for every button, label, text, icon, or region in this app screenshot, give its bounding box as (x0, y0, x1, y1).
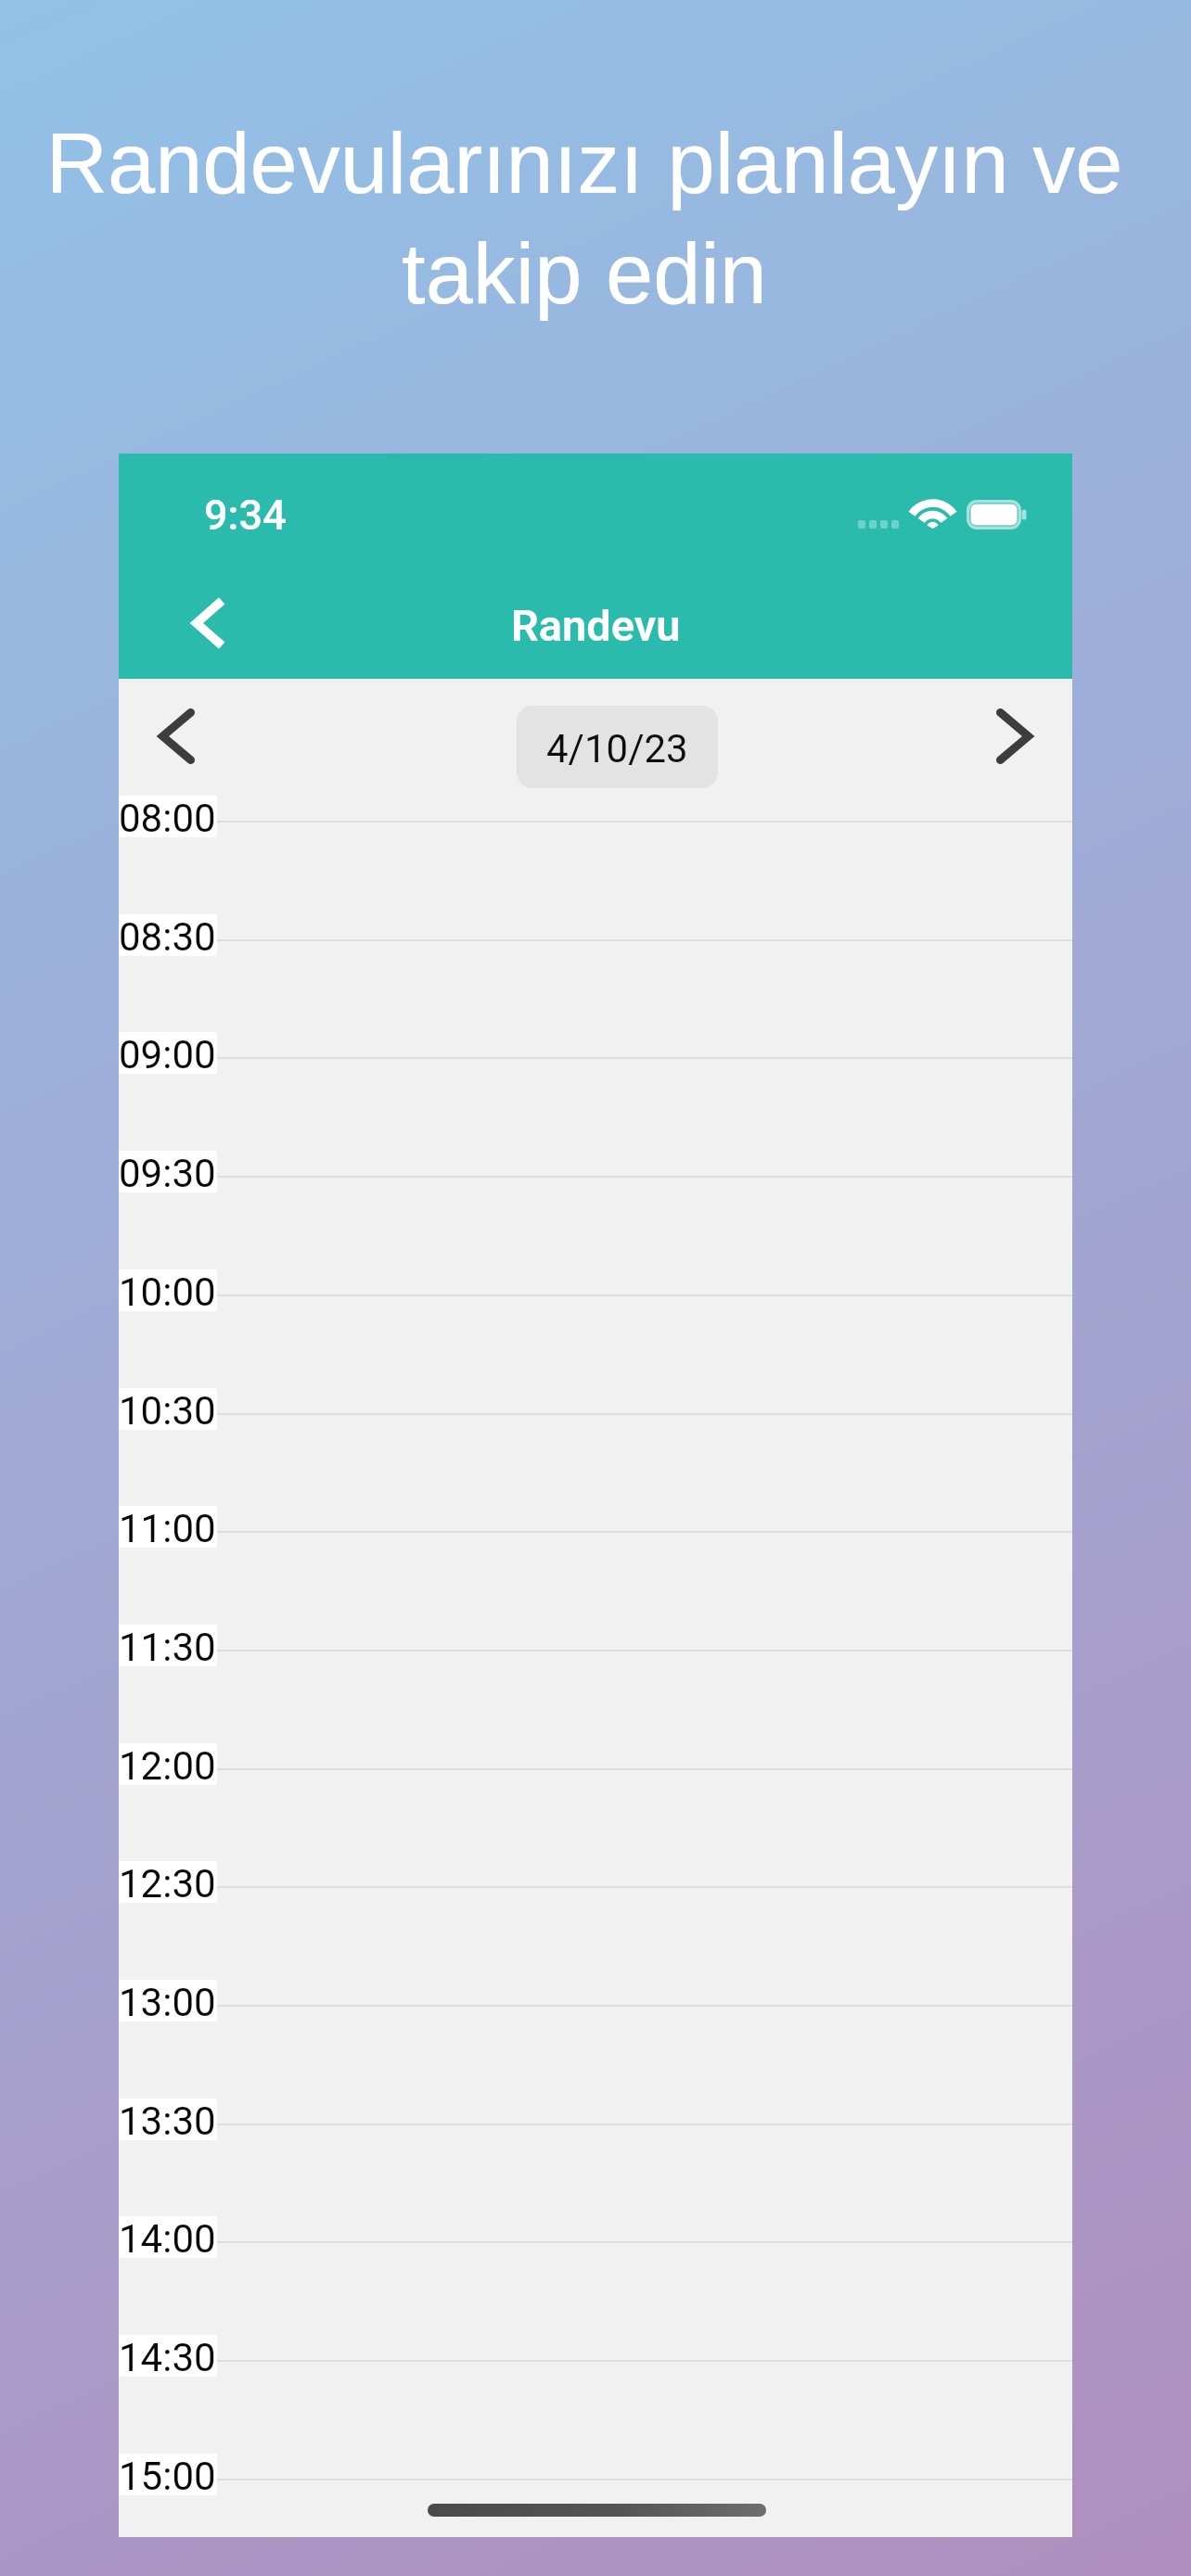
button[interactable]: Back (162, 587, 255, 659)
button[interactable] (119, 2241, 1072, 2359)
button[interactable] (119, 1413, 1072, 1531)
staticText: 11:30 (119, 1625, 216, 1666)
staticText: 09:30 (119, 1151, 216, 1192)
staticText: 13:30 (119, 2098, 216, 2140)
button[interactable] (119, 821, 1072, 938)
button[interactable]: Previous day (119, 685, 234, 787)
button[interactable] (119, 1531, 1072, 1649)
staticText: 10:00 (119, 1269, 216, 1311)
staticText: 08:30 (119, 914, 216, 956)
button[interactable] (119, 1057, 1072, 1175)
staticText: 14:30 (119, 2335, 216, 2377)
staticText: 13:00 (119, 1980, 216, 2021)
staticText: 15:00 (119, 2454, 216, 2495)
button[interactable] (119, 2005, 1072, 2123)
staticText: Randevu (511, 600, 681, 651)
staticText: 14:00 (119, 2216, 216, 2258)
staticText: 9:34 (204, 491, 287, 540)
button[interactable] (119, 1886, 1072, 2004)
button[interactable] (119, 1768, 1072, 1886)
staticText: 12:00 (119, 1743, 216, 1785)
button[interactable] (119, 2360, 1072, 2478)
button[interactable] (119, 939, 1072, 1057)
staticText: 09:00 (119, 1032, 216, 1074)
staticText: 08:00 (119, 796, 216, 837)
button[interactable] (119, 1294, 1072, 1412)
staticText: 10:30 (119, 1388, 216, 1430)
button[interactable] (119, 2123, 1072, 2241)
button[interactable] (119, 1176, 1072, 1294)
staticText: 11:00 (119, 1506, 216, 1548)
staticText: Randevularınızı planlayın ve takip edin (17, 116, 1152, 322)
button[interactable] (119, 2479, 1072, 2576)
button[interactable]: Next day (956, 685, 1071, 787)
button[interactable]: 4/10/23 (517, 706, 718, 788)
staticText: 12:30 (119, 1861, 216, 1903)
staticText: 4/10/23 (546, 726, 688, 772)
button[interactable] (119, 1650, 1072, 1767)
